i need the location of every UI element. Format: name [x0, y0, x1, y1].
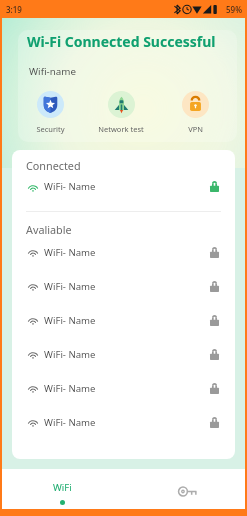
- button[interactable]: WiFi: [2, 469, 123, 509]
- button[interactable]: WiFi- Name: [12, 269, 235, 303]
- button[interactable]: WiFi- Name: [12, 337, 235, 371]
- staticText: WiFi- Name: [44, 382, 96, 395]
- staticText: WiFi- Name: [44, 416, 96, 429]
- staticText: Wi-Fi Connected Successful: [27, 32, 216, 51]
- button[interactable]: WiFi- Name: [12, 235, 235, 269]
- staticText: Avaliable: [26, 222, 72, 237]
- staticText: Wifi-name: [29, 65, 76, 78]
- button[interactable]: WiFi- Name: [12, 405, 235, 439]
- staticText: Security: [36, 124, 65, 134]
- button[interactable]: Network test: [86, 91, 156, 134]
- button[interactable]: WiFi- Name: [12, 173, 235, 200]
- button[interactable]: Saved passwords: [123, 469, 245, 509]
- button[interactable]: WiFi- Name: [12, 371, 235, 405]
- staticText: Network test: [98, 124, 144, 134]
- staticText: WiFi- Name: [44, 314, 96, 327]
- staticText: VPN: [188, 124, 203, 134]
- staticText: WiFi- Name: [44, 180, 96, 193]
- button[interactable]: VPN: [160, 91, 230, 134]
- staticText: 59%: [226, 4, 242, 15]
- button[interactable]: Security: [15, 91, 85, 134]
- staticText: WiFi- Name: [44, 348, 96, 361]
- staticText: WiFi- Name: [44, 246, 96, 259]
- button[interactable]: WiFi- Name: [12, 303, 235, 337]
- staticText: 3:19: [6, 4, 22, 15]
- staticText: WiFi: [53, 481, 72, 494]
- staticText: WiFi- Name: [44, 280, 96, 293]
- staticText: Connected: [26, 158, 81, 173]
